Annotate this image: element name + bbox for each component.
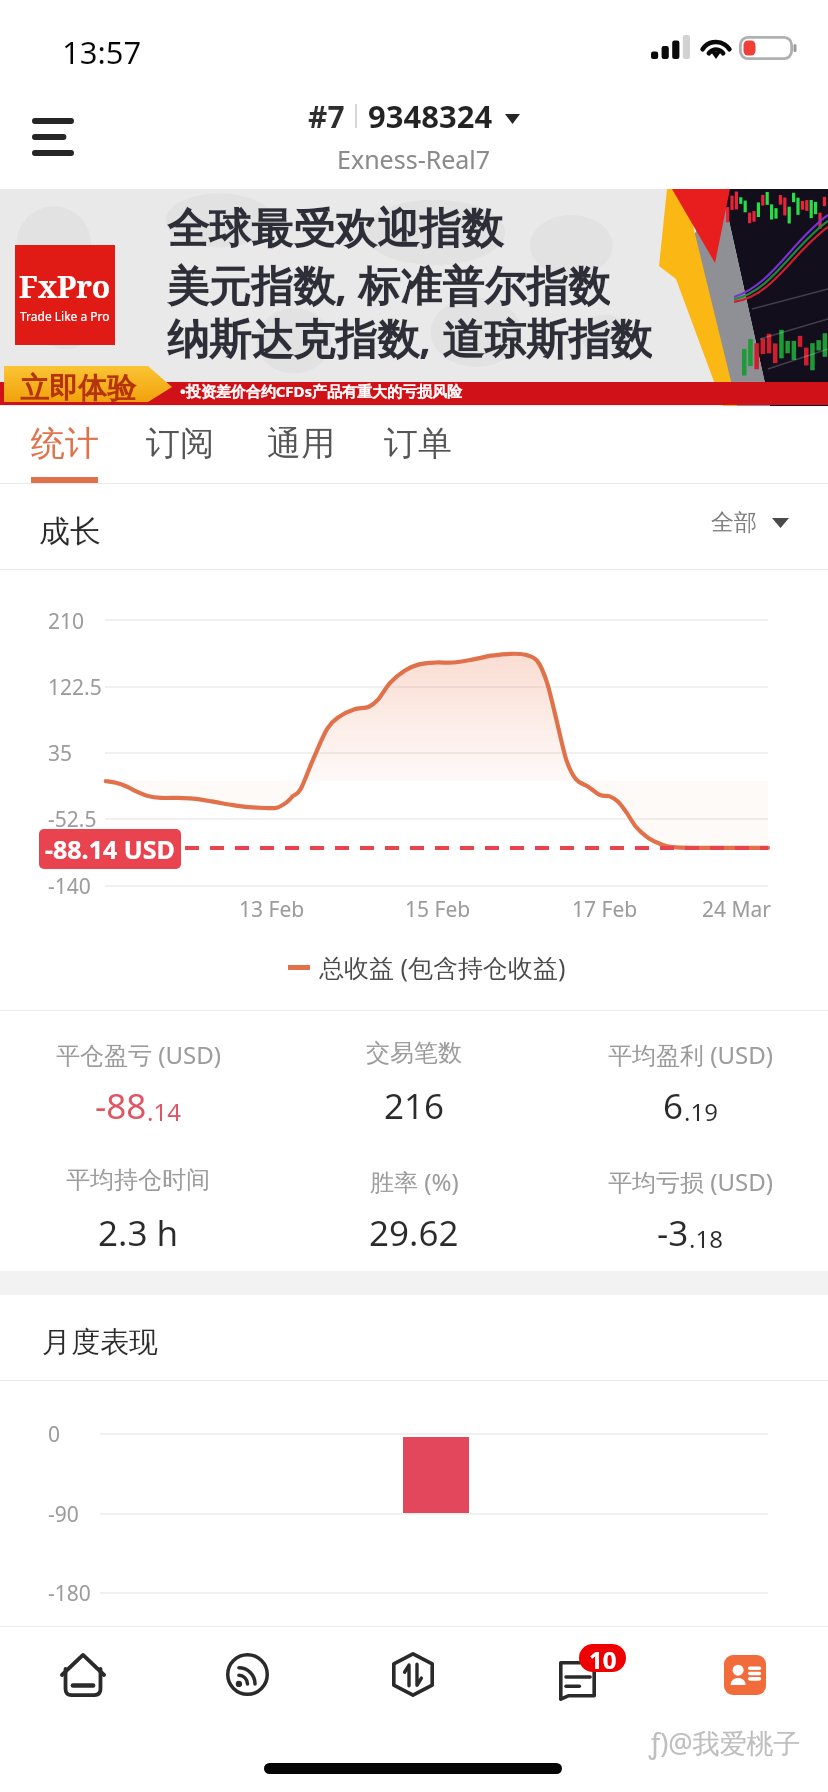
button[interactable]: Trade	[330, 1627, 496, 1722]
button[interactable]: Messages	[496, 1627, 662, 1722]
staticText: -90	[48, 1500, 79, 1529]
staticText: 订阅	[146, 422, 214, 465]
button[interactable]: Account	[662, 1627, 828, 1722]
staticText: 月度表现	[42, 1324, 158, 1361]
staticText: -52.5	[48, 805, 97, 834]
button[interactable]: 统计	[17, 411, 112, 483]
staticText: -180	[48, 1579, 91, 1608]
staticText: #7	[308, 96, 345, 137]
staticText: 6	[663, 1082, 684, 1130]
staticText: 2.3 h	[98, 1209, 179, 1257]
staticText: -88	[95, 1082, 147, 1130]
staticText: 全部	[711, 508, 757, 537]
staticText: 13:57	[62, 31, 142, 73]
staticText: 通用	[267, 422, 335, 465]
staticText: .18	[689, 1222, 723, 1255]
staticText: 24 Mar	[702, 895, 771, 924]
button[interactable]: 订阅	[132, 411, 227, 483]
button[interactable]: 全部	[711, 508, 789, 537]
button[interactable]: Menu	[10, 101, 96, 173]
staticText: 成长	[39, 512, 101, 551]
staticText: 平均持仓时间	[66, 1165, 210, 1195]
staticText: 总收益 (包含持仓收益)	[319, 950, 566, 984]
staticText: Exness-Real7	[337, 142, 491, 176]
staticText: 29.62	[369, 1209, 459, 1257]
staticText: Trade Like a Pro	[20, 308, 110, 324]
staticText: 统计	[31, 422, 99, 465]
staticText: 10	[589, 1644, 617, 1671]
staticText: 立即体验	[20, 370, 136, 407]
button[interactable]: Home	[0, 1627, 165, 1722]
button[interactable]: FxPro advertisement	[0, 189, 828, 406]
staticText: .19	[684, 1095, 718, 1128]
staticText: .14	[147, 1095, 181, 1128]
staticText: 13 Feb	[239, 895, 305, 924]
staticText: -3	[657, 1209, 689, 1257]
staticText: 0	[48, 1420, 61, 1449]
staticText: -140	[48, 872, 91, 901]
staticText: 胜率 (%)	[370, 1165, 459, 1198]
staticText: 35	[48, 739, 73, 768]
staticText: •投资差价合约CFDs产品有重大的亏损风险	[180, 381, 463, 401]
staticText: 216	[384, 1082, 445, 1130]
staticText: -88.14 USD	[45, 832, 175, 866]
staticText: ƒ)@我爱桃子	[649, 1724, 801, 1761]
staticText: 纳斯达克指数, 道琼斯指数	[167, 309, 652, 362]
staticText: 210	[48, 607, 85, 636]
staticText: 平仓盈亏 (USD)	[56, 1038, 221, 1071]
staticText: 9348324	[368, 95, 493, 137]
staticText: 交易笔数	[366, 1038, 462, 1068]
staticText: 122.5	[48, 673, 102, 702]
staticText: 17 Feb	[572, 895, 638, 924]
button[interactable]: Signals	[165, 1627, 330, 1722]
staticText: 平均盈利 (USD)	[608, 1038, 773, 1071]
staticText: 美元指数, 标准普尔指数	[167, 256, 610, 309]
button[interactable]: 通用	[253, 411, 348, 483]
staticText: 全球最受欢迎指数	[167, 203, 503, 256]
staticText: 订单	[384, 422, 452, 465]
button[interactable]: 订单	[370, 411, 465, 483]
staticText: FxPro	[19, 266, 111, 307]
staticText: 15 Feb	[405, 895, 471, 924]
staticText: 平均亏损 (USD)	[608, 1165, 773, 1198]
button[interactable]: #7	[308, 95, 520, 176]
